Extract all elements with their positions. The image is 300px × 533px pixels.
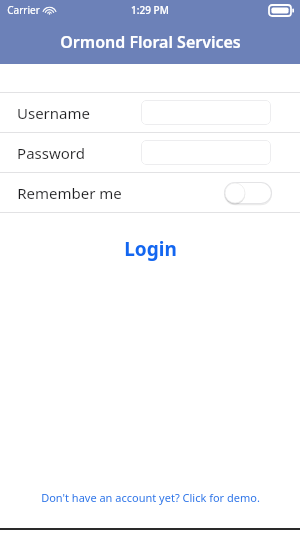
button[interactable]: Username xyxy=(0,93,300,132)
button[interactable]: Remember me toggle xyxy=(224,182,272,204)
staticText: Username xyxy=(17,103,90,123)
staticText: Login xyxy=(124,236,177,262)
staticText: Remember me xyxy=(17,183,122,203)
staticText: Password xyxy=(17,143,85,163)
button[interactable]: Login xyxy=(104,231,197,267)
staticText: Carrier xyxy=(7,3,40,17)
staticText: Ormond Floral Services xyxy=(60,31,241,53)
button[interactable]: Remember me xyxy=(0,173,300,212)
button[interactable]: Don't have an account yet? Click for dem… xyxy=(29,486,272,509)
staticText: 1:29 PM xyxy=(131,3,169,17)
button[interactable]: Password xyxy=(0,133,300,172)
staticText: Don't have an account yet? Click for dem… xyxy=(41,490,260,505)
